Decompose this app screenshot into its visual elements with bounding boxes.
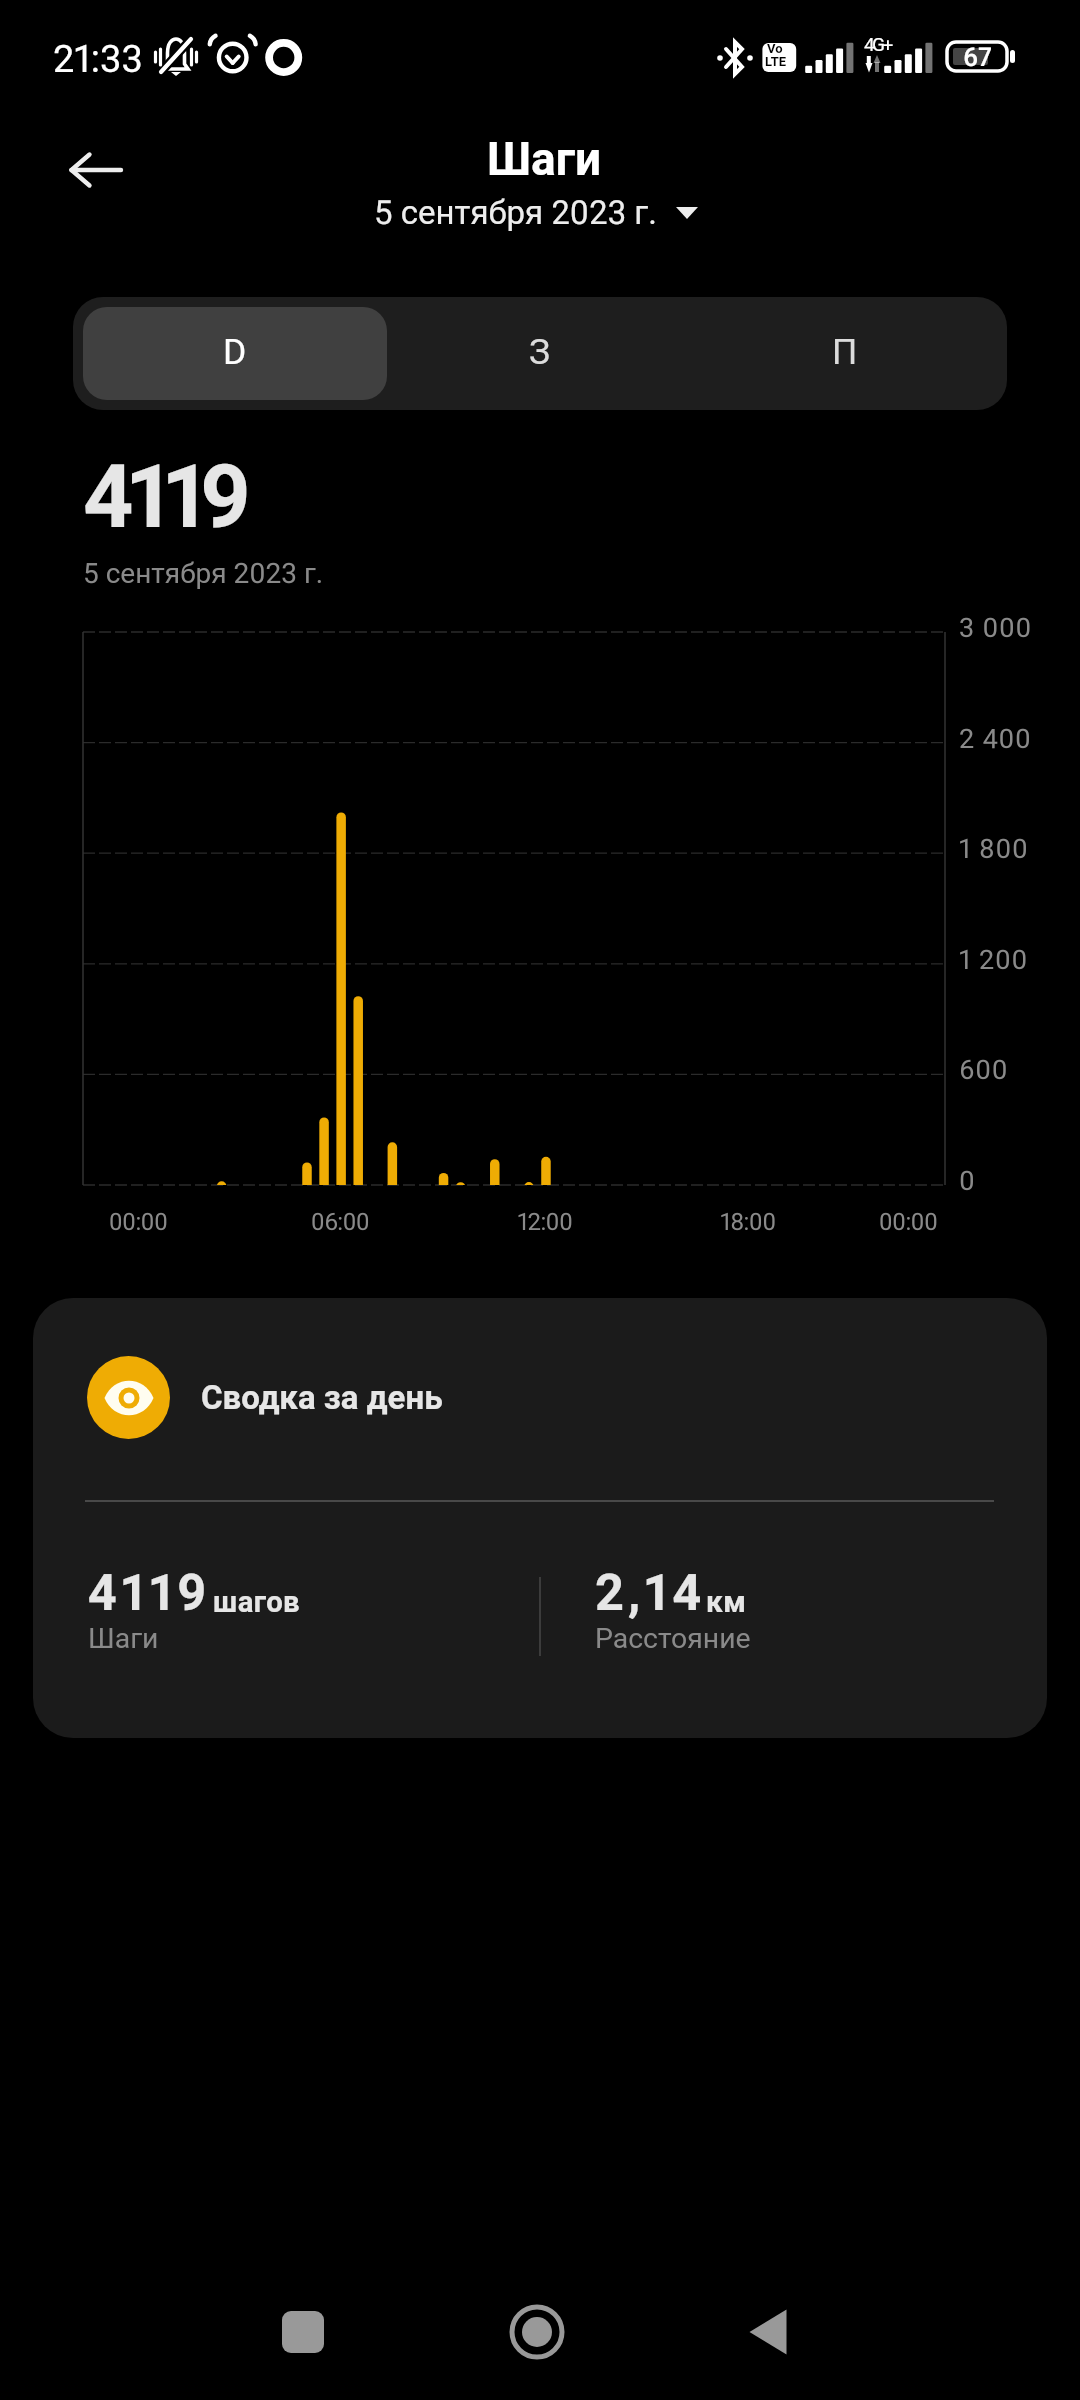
staticText: П (832, 331, 858, 373)
staticText: З (529, 331, 551, 373)
staticText: 1 200 (959, 944, 1028, 976)
staticText: 00:00 (838, 1208, 978, 1236)
staticText: шагов (213, 1585, 301, 1619)
button[interactable]: Home (492, 2287, 582, 2377)
staticText: 600 (959, 1054, 1009, 1086)
button[interactable]: Back (723, 2287, 813, 2377)
button[interactable]: П (692, 307, 997, 400)
staticText: D (223, 331, 247, 373)
staticText: км (706, 1584, 747, 1619)
staticText: 5 сентября 2023 г. (374, 193, 657, 232)
staticText: Vo (767, 41, 783, 56)
staticText: 1 800 (959, 833, 1029, 865)
staticText: 5 сентября 2023 г. (83, 557, 324, 590)
staticText: 67 (963, 42, 992, 72)
staticText: Сводка за день (201, 1378, 443, 1417)
staticText: Шаги (88, 1622, 159, 1655)
staticText: 12:00 (475, 1208, 615, 1236)
staticText: 18:00 (678, 1208, 818, 1236)
staticText: Шаги (487, 132, 602, 186)
staticText: 2,14 (595, 1563, 706, 1622)
staticText: 00:00 (68, 1208, 208, 1236)
staticText: 06:00 (270, 1208, 410, 1236)
staticText: 4G+ (864, 33, 891, 55)
button[interactable]: Сводка за день (33, 1298, 1047, 1738)
staticText: 0 (959, 1165, 976, 1197)
staticText: 4119 (88, 1563, 211, 1622)
staticText: 21:33 (53, 37, 143, 82)
staticText: Расстояние (595, 1622, 751, 1655)
staticText: 2 400 (959, 723, 1032, 755)
staticText: 4119 (83, 445, 246, 548)
button[interactable]: З (387, 307, 692, 400)
button[interactable]: Back (50, 125, 140, 215)
staticText: LTE (765, 54, 787, 69)
staticText: 3 000 (959, 612, 1032, 644)
button[interactable]: D (83, 307, 387, 400)
button[interactable]: 5 сентября 2023 г. (374, 193, 698, 232)
button[interactable]: Recent apps (258, 2287, 348, 2377)
